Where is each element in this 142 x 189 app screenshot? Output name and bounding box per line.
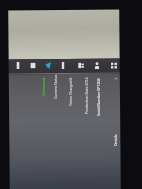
staticText: Times Charged 6 xyxy=(68,77,73,106)
staticText: Serial Number SP1204 xyxy=(96,78,101,116)
button[interactable]: Settings xyxy=(107,58,121,73)
button[interactable]: Battery xyxy=(56,58,70,73)
staticText: Production Date 2014 xyxy=(84,77,89,114)
button[interactable]: Send xyxy=(41,58,55,73)
staticText: Details xyxy=(113,134,118,146)
button[interactable]: Menu xyxy=(11,58,25,73)
button[interactable]: Reports xyxy=(74,58,88,73)
staticText: Current Status xyxy=(53,74,58,99)
button[interactable]: Documents xyxy=(26,58,40,73)
button[interactable]: Collapse xyxy=(110,73,122,85)
staticText: Connected xyxy=(41,77,46,96)
button[interactable]: Profile xyxy=(90,58,104,73)
